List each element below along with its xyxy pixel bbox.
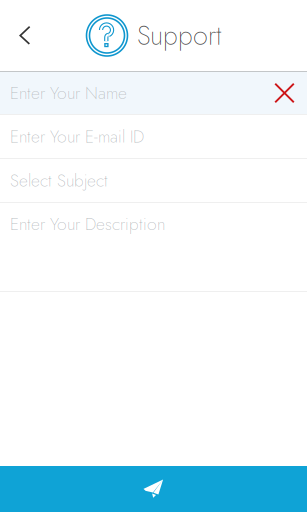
staticText: Enter Your Name	[10, 80, 127, 105]
button[interactable]: Send	[0, 466, 307, 512]
staticText: Select Subject	[10, 168, 108, 193]
button[interactable]: Enter Your E-mail ID	[0, 115, 307, 159]
button[interactable]: Enter Your Description	[0, 203, 307, 292]
staticText: Support	[137, 16, 221, 55]
button[interactable]: Back	[0, 0, 50, 71]
button[interactable]: Enter Your Name	[0, 72, 307, 115]
button[interactable]: Select Subject	[0, 159, 307, 203]
staticText: Enter Your E-mail ID	[10, 124, 144, 149]
staticText: Enter Your Description	[10, 211, 165, 236]
